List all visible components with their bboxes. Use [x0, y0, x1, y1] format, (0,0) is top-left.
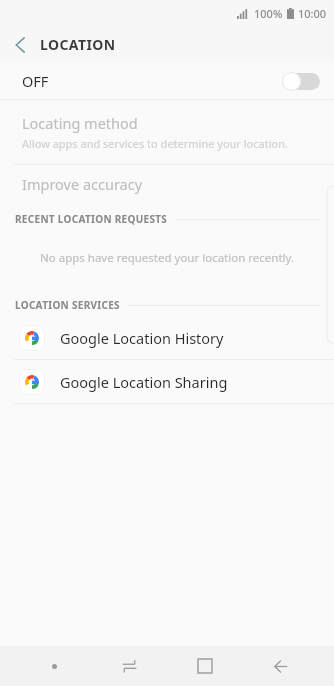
- button[interactable]: Location off: [282, 70, 320, 92]
- staticText: 10:00: [298, 6, 327, 21]
- staticText: No apps have requested your location rec…: [40, 250, 294, 266]
- staticText: Google Location History: [60, 328, 224, 348]
- staticText: 100%: [254, 6, 283, 21]
- button[interactable]: Improve accuracy: [0, 165, 334, 203]
- button[interactable]: Back: [0, 26, 40, 63]
- button[interactable]: Home: [183, 646, 227, 686]
- staticText: LOCATION SERVICES: [15, 298, 120, 312]
- staticText: OFF: [22, 71, 49, 91]
- staticText: Allow apps and services to determine you…: [22, 136, 288, 151]
- button[interactable]: Menu indicator: [32, 646, 76, 686]
- button[interactable]: Google Location History: [0, 316, 334, 359]
- staticText: RECENT LOCATION REQUESTS: [15, 212, 168, 226]
- button[interactable]: Google Location Sharing: [0, 360, 334, 403]
- staticText: Google Location Sharing: [60, 372, 228, 392]
- staticText: Locating method: [22, 113, 138, 133]
- staticText: Improve accuracy: [22, 174, 143, 194]
- staticText: LOCATION: [40, 35, 116, 54]
- button[interactable]: OFF: [0, 63, 334, 99]
- button[interactable]: Recent apps: [107, 646, 151, 686]
- button[interactable]: Back: [258, 646, 302, 686]
- button[interactable]: Locating method: [0, 113, 334, 151]
